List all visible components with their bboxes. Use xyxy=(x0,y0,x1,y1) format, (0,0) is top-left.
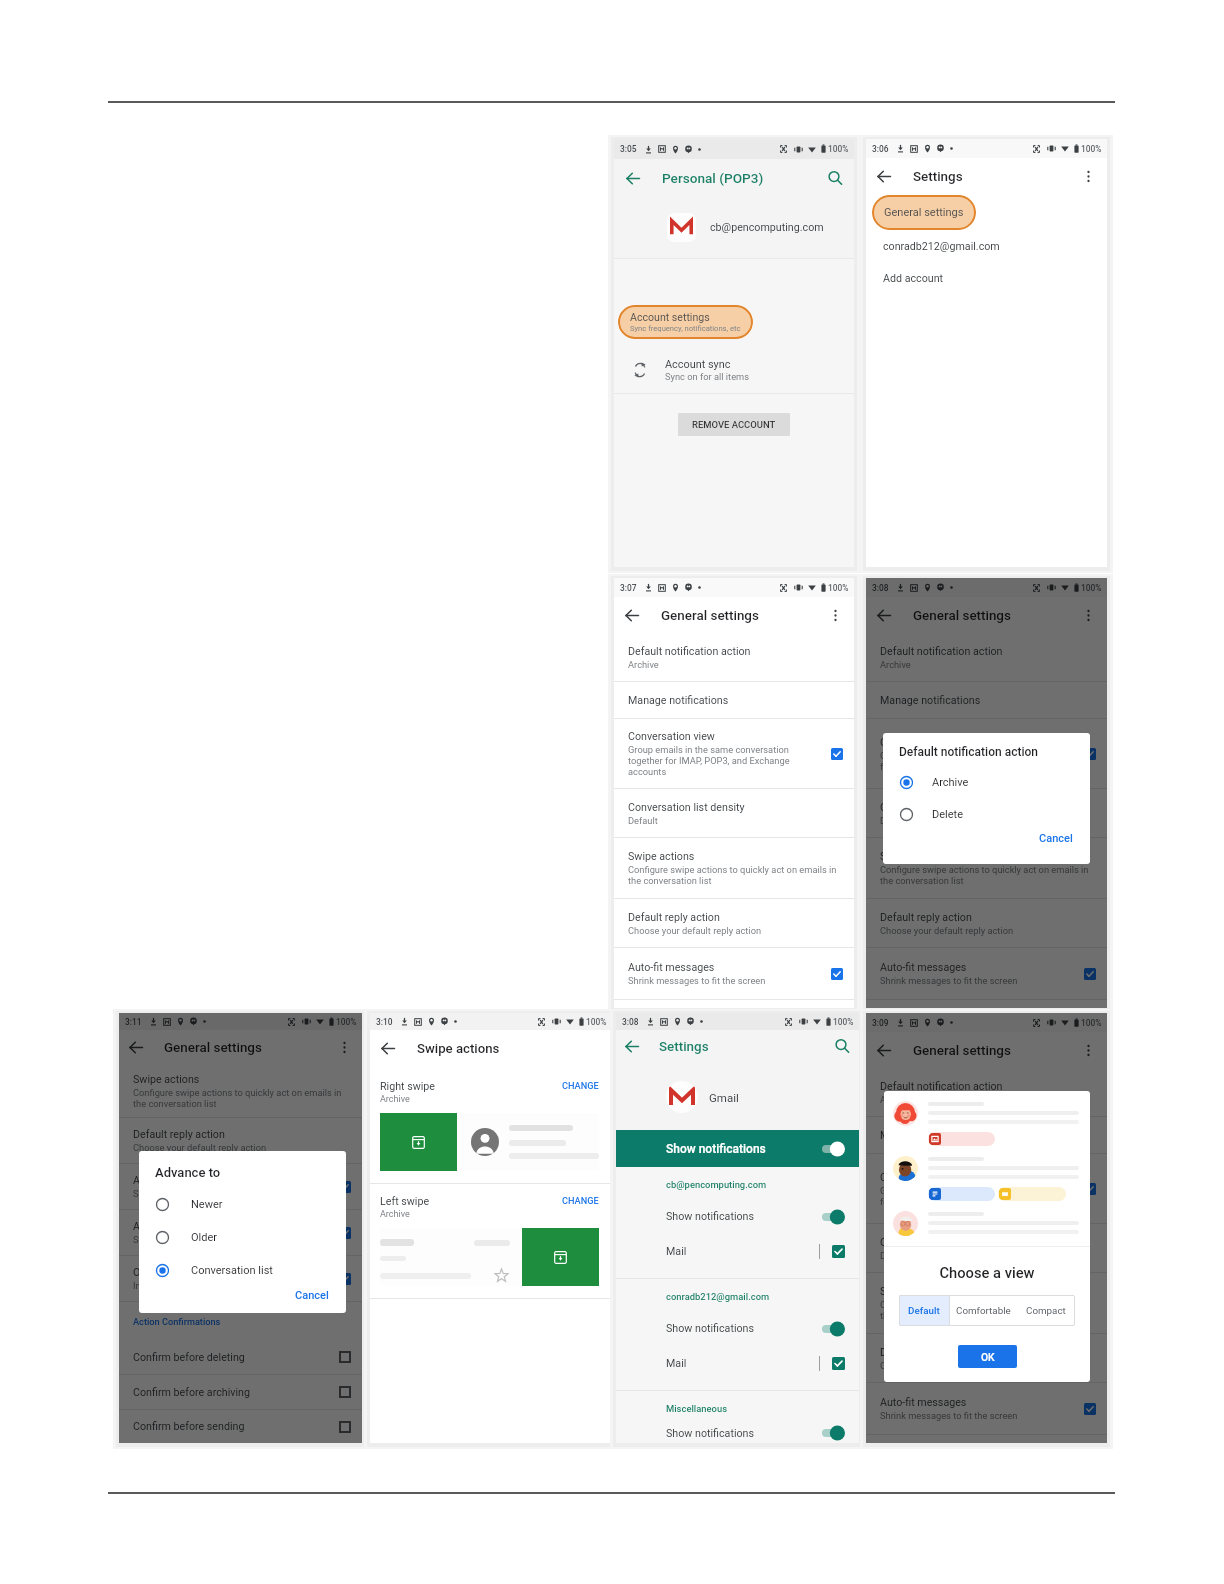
button[interactable]: Auto-fit messages xyxy=(866,948,1107,999)
staticText: REMOVE ACCOUNT xyxy=(692,419,776,430)
button[interactable]: Show notifications xyxy=(616,1423,859,1443)
button[interactable]: Comfortable xyxy=(950,1295,1017,1326)
button[interactable]: REMOVE ACCOUNT xyxy=(678,413,790,436)
staticText: 3:08 xyxy=(872,583,889,593)
button[interactable]: Conversation list density xyxy=(866,1224,1107,1272)
staticText: Personal (POP3) xyxy=(662,170,764,186)
button[interactable]: Back xyxy=(866,158,903,195)
button[interactable]: Confirm before sending xyxy=(119,1410,362,1443)
button[interactable]: Confirm before deleting xyxy=(119,1340,362,1374)
button[interactable]: Default reply action xyxy=(866,899,1107,947)
button[interactable]: Mail xyxy=(616,1346,859,1381)
staticText: Newer xyxy=(191,1198,223,1211)
staticText: General settings xyxy=(913,1043,1011,1059)
button[interactable]: Back xyxy=(370,1030,407,1067)
button[interactable]: Default xyxy=(899,1295,949,1326)
staticText: General settings xyxy=(884,206,964,219)
staticText: Manage notifications xyxy=(880,1129,981,1142)
button[interactable]: Auto-fit messages xyxy=(119,1164,362,1209)
button[interactable]: Add account xyxy=(866,267,1107,289)
staticText: 100% xyxy=(1081,144,1102,154)
button[interactable]: Search xyxy=(816,159,854,197)
button[interactable]: Default notification action xyxy=(866,1069,1107,1116)
staticText: 3:08 xyxy=(622,1017,639,1027)
staticText: Cancel xyxy=(1039,832,1073,845)
button[interactable]: Swipe actions xyxy=(119,1065,362,1117)
staticText: Swipe actions xyxy=(880,1285,947,1298)
button[interactable]: Conversation list xyxy=(155,1257,332,1283)
button[interactable]: Show notifications xyxy=(616,1130,859,1167)
staticText: CHANGE xyxy=(562,1195,599,1206)
button[interactable]: Show notifications xyxy=(616,1199,859,1234)
button[interactable]: Default notification action xyxy=(866,634,1107,681)
button[interactable]: Manage notifications xyxy=(866,1117,1107,1153)
button[interactable]: CHANGE xyxy=(562,1080,599,1091)
button[interactable]: Search xyxy=(826,1030,859,1063)
button[interactable]: Back xyxy=(866,1032,903,1069)
button[interactable]: Archive xyxy=(899,769,1076,795)
staticText: Confirm before archiving xyxy=(133,1386,339,1399)
button[interactable]: Swipe actions xyxy=(866,838,1107,898)
button[interactable]: Default notification action xyxy=(614,634,854,681)
staticText: OK xyxy=(981,1351,995,1363)
button[interactable]: Back xyxy=(866,597,903,634)
staticText: Conversation view xyxy=(880,1171,967,1184)
button[interactable]: More options xyxy=(1070,597,1107,634)
button[interactable]: Conversation list density xyxy=(866,789,1107,837)
staticText: Open web links xyxy=(133,1266,205,1279)
staticText: Left swipe xyxy=(380,1195,430,1208)
button[interactable]: Delete xyxy=(899,801,1076,827)
staticText: Archive xyxy=(380,1094,410,1105)
button[interactable]: Conversation view xyxy=(866,719,1107,788)
staticText: 100% xyxy=(1081,583,1102,593)
staticText: Show notifications xyxy=(666,1322,822,1335)
button[interactable]: Back xyxy=(119,1030,154,1065)
button[interactable]: Account sync xyxy=(614,347,854,393)
button[interactable]: Auto-fit messages xyxy=(614,948,854,999)
staticText: Archive xyxy=(880,1094,911,1105)
staticText: Auto-fit messages xyxy=(880,1396,967,1409)
button[interactable]: Conversation view xyxy=(866,1154,1107,1223)
staticText: Default xyxy=(908,1305,940,1316)
staticText: General settings xyxy=(164,1040,262,1056)
staticText: cb@pencomputing.com xyxy=(710,221,824,234)
button[interactable]: Advance to xyxy=(119,1210,362,1255)
button[interactable]: Open web links xyxy=(119,1256,362,1301)
staticText: Show notifications xyxy=(666,1210,822,1223)
staticText: Choose your default reply action xyxy=(880,1360,1014,1371)
button[interactable]: Default reply action xyxy=(119,1118,362,1163)
button[interactable]: Older xyxy=(155,1224,332,1250)
staticText: Comfortable xyxy=(956,1305,1011,1316)
staticText: Sync on for all items xyxy=(665,371,750,382)
button[interactable]: Mail xyxy=(616,1234,859,1269)
button[interactable]: Manage notifications xyxy=(866,682,1107,718)
button[interactable]: Default reply action xyxy=(866,1334,1107,1382)
button[interactable]: Swipe actions xyxy=(866,1273,1107,1333)
staticText: Configure swipe actions to quickly act o… xyxy=(628,864,843,886)
button[interactable]: OK xyxy=(958,1345,1017,1368)
button[interactable]: Compact xyxy=(1017,1295,1075,1326)
button[interactable]: Manage notifications xyxy=(614,682,854,718)
button[interactable]: Cancel xyxy=(1036,829,1076,848)
button[interactable]: More options xyxy=(817,597,854,634)
button[interactable]: Auto-fit messages xyxy=(866,1383,1107,1434)
button[interactable]: Newer xyxy=(155,1191,332,1217)
staticText: 100% xyxy=(586,1017,607,1027)
staticText: 3:05 xyxy=(620,144,637,154)
button[interactable]: Cancel xyxy=(292,1286,332,1305)
button[interactable]: Back xyxy=(614,597,651,634)
button[interactable]: More options xyxy=(1070,158,1107,195)
button[interactable]: More options xyxy=(327,1030,362,1065)
button[interactable]: Conversation view xyxy=(614,719,854,788)
button[interactable]: Swipe actions xyxy=(614,838,854,898)
button[interactable]: Back xyxy=(614,159,652,197)
button[interactable]: Back xyxy=(616,1030,649,1063)
button[interactable]: Show notifications xyxy=(616,1311,859,1346)
button[interactable]: Conversation list density xyxy=(614,789,854,837)
button[interactable]: Default reply action xyxy=(614,899,854,947)
staticText: Action Confirmations xyxy=(133,1316,221,1327)
button[interactable]: CHANGE xyxy=(562,1195,599,1206)
staticText: Settings xyxy=(659,1039,709,1055)
button[interactable]: Confirm before archiving xyxy=(119,1375,362,1409)
button[interactable]: More options xyxy=(1070,1032,1107,1069)
